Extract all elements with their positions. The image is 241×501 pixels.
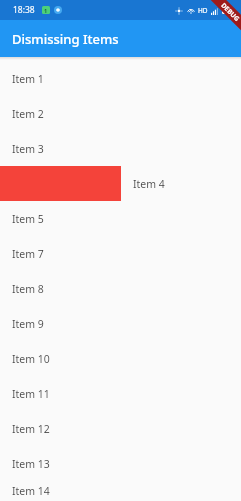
staticText: Item 13 — [12, 457, 50, 471]
button[interactable]: Item 8 — [0, 271, 241, 306]
button[interactable]: Item 11 — [0, 376, 241, 411]
staticText: Item 9 — [12, 317, 44, 331]
staticText: HD — [198, 6, 208, 15]
button[interactable]: Item 10 — [0, 341, 241, 376]
button[interactable]: Delete — [0, 166, 241, 201]
staticText: Item 7 — [12, 247, 44, 261]
button[interactable]: Item 3 — [0, 131, 241, 166]
button[interactable]: Item 14 — [0, 481, 241, 501]
button[interactable]: Item 5 — [0, 201, 241, 236]
button[interactable]: Item 13 — [0, 446, 241, 481]
button[interactable]: Item 7 — [0, 236, 241, 271]
staticText: Item 11 — [12, 387, 50, 401]
staticText: Item 2 — [12, 107, 44, 121]
staticText: Item 14 — [12, 484, 50, 498]
staticText: Item 4 — [133, 177, 165, 191]
staticText: 1 — [44, 7, 48, 14]
button[interactable]: Item 9 — [0, 306, 241, 341]
staticText: DEBUG — [219, 0, 241, 23]
staticText: Dismissing Items — [12, 30, 119, 48]
staticText: Item 5 — [12, 212, 44, 226]
button[interactable]: Item 12 — [0, 411, 241, 446]
staticText: Item 3 — [12, 142, 44, 156]
staticText: Item 12 — [12, 422, 50, 436]
button[interactable]: Item 2 — [0, 96, 241, 131]
staticText: Item 10 — [12, 352, 50, 366]
staticText: Item 8 — [12, 282, 44, 296]
button[interactable]: Item 1 — [0, 61, 241, 96]
staticText: Item 1 — [12, 72, 44, 86]
staticText: 18:38 — [13, 4, 35, 16]
